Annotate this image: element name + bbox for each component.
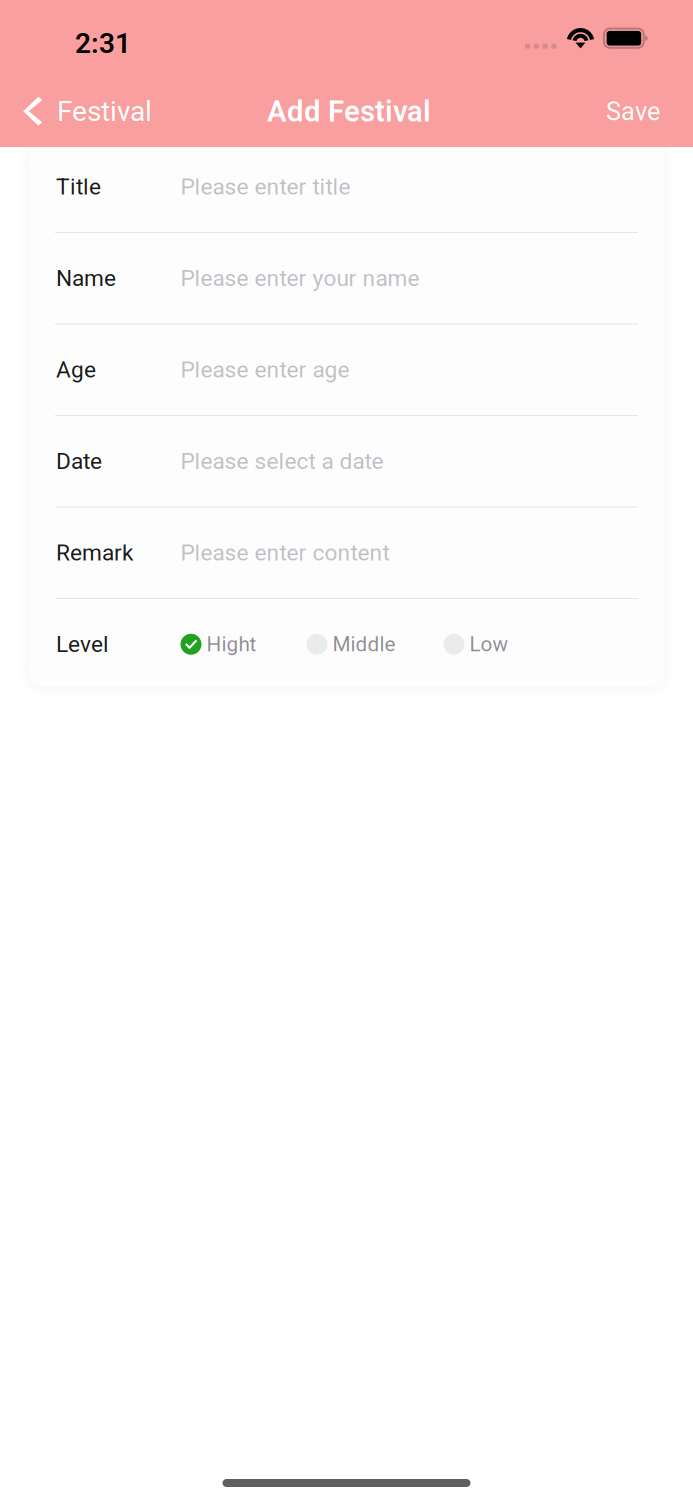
staticText: Remark <box>56 539 133 566</box>
staticText: Please enter age <box>180 356 349 383</box>
staticText: Date <box>56 448 102 475</box>
staticText: Add Festival <box>267 94 431 129</box>
staticText: 2:31 <box>75 27 131 60</box>
staticText: Please select a date <box>180 448 383 475</box>
staticText: Name <box>56 265 116 292</box>
staticText: Please enter your name <box>180 265 419 292</box>
staticText: Hight <box>206 632 256 656</box>
staticText: Age <box>56 356 96 383</box>
staticText: Title <box>56 173 101 200</box>
button[interactable]: Hight <box>180 632 256 656</box>
staticText: Low <box>469 632 508 656</box>
button[interactable]: Low <box>443 632 508 656</box>
button[interactable]: Festival <box>0 76 168 147</box>
button[interactable]: Save <box>586 76 693 147</box>
button[interactable]: Middle <box>306 632 395 656</box>
staticText: Save <box>606 97 660 126</box>
staticText: Level <box>56 631 109 658</box>
staticText: Festival <box>57 95 152 128</box>
staticText: Please enter content <box>180 539 389 566</box>
staticText: Please enter title <box>180 173 350 200</box>
staticText: Middle <box>332 632 395 656</box>
